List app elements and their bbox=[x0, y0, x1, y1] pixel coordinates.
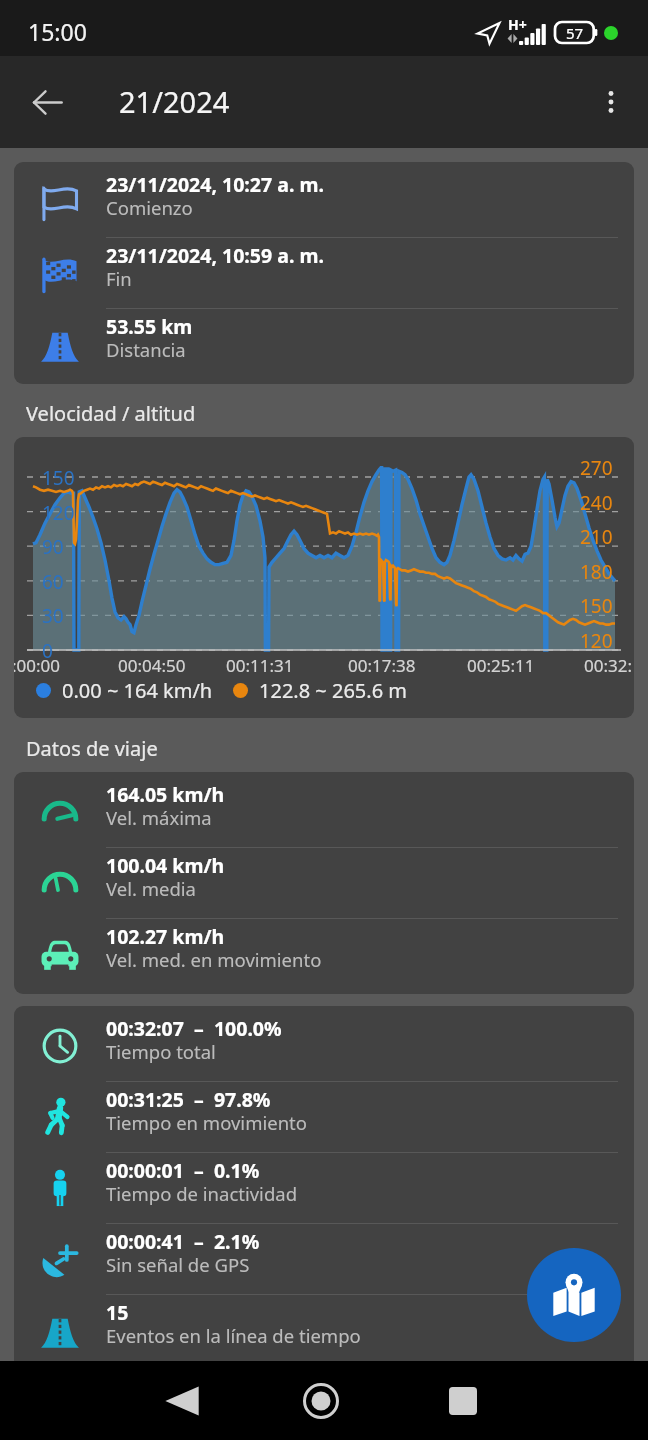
button[interactable]: More options bbox=[584, 75, 638, 129]
staticText: 00:17:38 bbox=[348, 654, 416, 677]
staticText: 180 bbox=[580, 559, 613, 585]
staticText: 30 bbox=[42, 603, 64, 629]
staticText: Velocidad / altitud bbox=[26, 400, 196, 427]
staticText: :00:00 bbox=[14, 654, 61, 677]
staticText: 00:32: bbox=[584, 654, 633, 677]
staticText: 100.04 km/h bbox=[106, 852, 225, 879]
staticText: Comienzo bbox=[106, 195, 193, 220]
button[interactable]: 00:00:41 – 2.1% bbox=[14, 1224, 634, 1295]
staticText: 21/2024 bbox=[119, 82, 230, 121]
button[interactable]: 00:00:01 – 0.1% bbox=[14, 1153, 634, 1224]
staticText: 15:00 bbox=[28, 16, 87, 47]
button[interactable]: Show on map bbox=[527, 1248, 621, 1342]
staticText: 00:32:07 – 100.0% bbox=[106, 1015, 282, 1042]
staticText: Tiempo total bbox=[106, 1039, 216, 1064]
staticText: 90 bbox=[42, 534, 64, 560]
staticText: Vel. máxima bbox=[106, 805, 212, 830]
staticText: 240 bbox=[580, 490, 613, 516]
staticText: 150 bbox=[580, 593, 613, 619]
button[interactable]: Back bbox=[20, 75, 74, 129]
button[interactable]: Back bbox=[148, 1367, 216, 1435]
staticText: Tiempo de inactividad bbox=[106, 1181, 298, 1206]
button[interactable]: 00:32:07 – 100.0% bbox=[14, 1011, 634, 1082]
staticText: 00:31:25 – 97.8% bbox=[106, 1086, 271, 1113]
staticText: 00:00:41 – 2.1% bbox=[106, 1228, 260, 1255]
staticText: Vel. media bbox=[106, 876, 196, 901]
staticText: 150 bbox=[42, 465, 75, 491]
staticText: 57 bbox=[566, 23, 584, 43]
button[interactable]: 15 bbox=[14, 1295, 634, 1365]
staticText: 60 bbox=[42, 569, 64, 595]
staticText: 270 bbox=[580, 455, 613, 481]
button[interactable]: 00:31:25 – 97.8% bbox=[14, 1082, 634, 1153]
button[interactable]: Recent apps bbox=[429, 1367, 497, 1435]
staticText: 102.27 km/h bbox=[106, 923, 225, 950]
staticText: 00:25:11 bbox=[467, 654, 535, 677]
staticText: Fin bbox=[106, 266, 132, 291]
button[interactable]: Home bbox=[287, 1367, 355, 1435]
staticText: 00:11:31 bbox=[226, 654, 294, 677]
staticText: Sin señal de GPS bbox=[106, 1252, 250, 1277]
staticText: 0.00 ~ 164 km/h bbox=[62, 677, 213, 704]
button[interactable]: 23/11/2024, 10:27 a. m. bbox=[14, 167, 634, 238]
staticText: 164.05 km/h bbox=[106, 781, 225, 808]
staticText: 15 bbox=[106, 1299, 129, 1326]
staticText: 120 bbox=[580, 628, 613, 654]
staticText: 00:00:01 – 0.1% bbox=[106, 1157, 260, 1184]
button[interactable]: 53.55 km bbox=[14, 309, 634, 379]
staticText: 00:04:50 bbox=[118, 654, 186, 677]
staticText: 0 bbox=[42, 638, 53, 664]
staticText: 53.55 km bbox=[106, 313, 193, 340]
button[interactable]: 102.27 km/h bbox=[14, 919, 634, 989]
staticText: 23/11/2024, 10:59 a. m. bbox=[106, 242, 324, 269]
button[interactable]: 100.04 km/h bbox=[14, 848, 634, 919]
staticText: Vel. med. en movimiento bbox=[106, 947, 322, 972]
staticText: Datos de viaje bbox=[26, 735, 158, 762]
button[interactable]: 164.05 km/h bbox=[14, 777, 634, 848]
staticText: Tiempo en movimiento bbox=[106, 1110, 307, 1135]
staticText: 210 bbox=[580, 524, 613, 550]
staticText: 122.8 ~ 265.6 m bbox=[259, 677, 407, 704]
staticText: H+ bbox=[508, 15, 527, 34]
staticText: Distancia bbox=[106, 337, 186, 362]
staticText: 23/11/2024, 10:27 a. m. bbox=[106, 171, 324, 198]
staticText: 120 bbox=[42, 500, 75, 526]
button[interactable]: 23/11/2024, 10:59 a. m. bbox=[14, 238, 634, 309]
staticText: Eventos en la línea de tiempo bbox=[106, 1323, 361, 1348]
